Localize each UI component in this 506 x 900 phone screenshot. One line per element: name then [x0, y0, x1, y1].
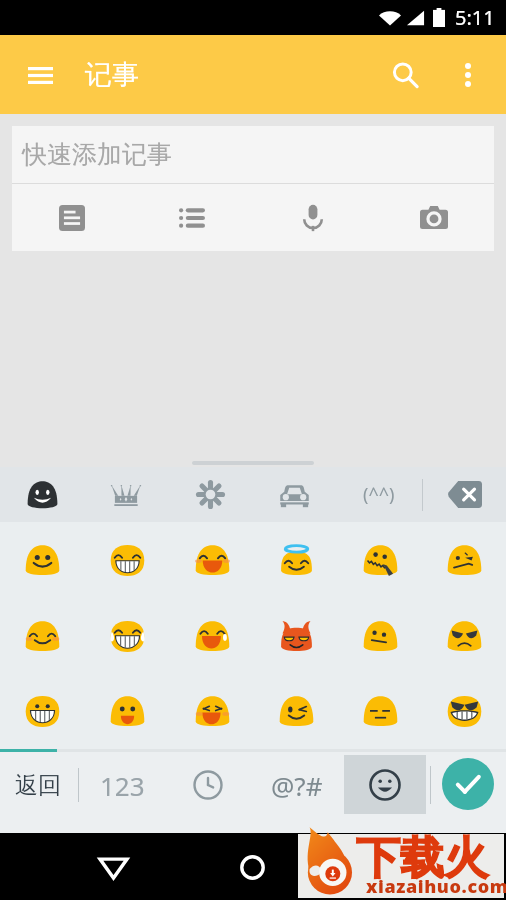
button[interactable]: 返回 — [0, 749, 76, 821]
button[interactable]: Backspace — [423, 467, 506, 522]
button[interactable]: Emoji 0 — [0, 522, 85, 598]
staticText: 返回 — [15, 771, 61, 800]
button[interactable]: Emoji — [344, 755, 426, 814]
button[interactable]: Menu — [15, 50, 65, 100]
button[interactable]: New list — [132, 184, 252, 251]
button[interactable]: @?# — [254, 749, 340, 821]
button[interactable]: Smileys — [0, 467, 84, 522]
button[interactable]: Emoji 3 — [254, 522, 338, 598]
button[interactable]: Home — [228, 843, 276, 891]
staticText: 快速添加记事 — [22, 139, 172, 170]
button[interactable]: Nature — [168, 467, 252, 522]
button[interactable]: Emoji 10 — [338, 598, 422, 674]
button[interactable]: Objects — [84, 467, 168, 522]
button[interactable]: 123 — [82, 749, 162, 821]
button[interactable]: Search — [380, 50, 430, 100]
staticText: @?# — [271, 768, 323, 803]
button[interactable]: Emoji 2 — [170, 522, 254, 598]
staticText: 记事 — [85, 58, 139, 92]
staticText: (^^) — [363, 482, 395, 507]
button[interactable]: Emoji 5 — [422, 522, 506, 598]
button[interactable]: Emoji 6 — [0, 598, 85, 674]
button[interactable]: Emoji 13 — [85, 674, 170, 749]
button[interactable]: Voice note — [252, 184, 373, 251]
button[interactable]: Emoji 9 — [254, 598, 338, 674]
button[interactable]: Emoji 17 — [422, 674, 506, 749]
button[interactable]: Recent — [168, 749, 248, 821]
button[interactable]: Done — [442, 758, 494, 810]
button[interactable]: More options — [444, 51, 492, 99]
button[interactable]: Emoji 12 — [0, 674, 85, 749]
button[interactable]: Travel — [252, 467, 336, 522]
button[interactable]: Photo note — [373, 184, 494, 251]
button[interactable]: Emoji 15 — [254, 674, 338, 749]
button[interactable]: Emoji 11 — [422, 598, 506, 674]
button[interactable]: Emoji 16 — [338, 674, 422, 749]
staticText: xiazaihuo.com — [366, 874, 506, 899]
button[interactable]: Emoji 4 — [338, 522, 422, 598]
button[interactable]: Emoji 8 — [170, 598, 254, 674]
button[interactable]: 快速添加记事 — [12, 126, 494, 183]
button[interactable]: Emoji 7 — [85, 598, 170, 674]
button[interactable]: New note — [12, 184, 132, 251]
staticText: 5:11 — [455, 4, 495, 31]
button[interactable]: Emoji 14 — [170, 674, 254, 749]
staticText: 下载火 — [356, 831, 488, 886]
button[interactable]: (^^) — [336, 467, 422, 522]
staticText: 123 — [100, 768, 145, 803]
button[interactable]: Emoji 1 — [85, 522, 170, 598]
button[interactable]: Back — [89, 843, 137, 891]
